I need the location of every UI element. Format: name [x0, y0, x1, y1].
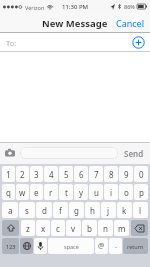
staticText: v: [71, 223, 76, 234]
staticText: 9: [124, 169, 129, 180]
staticText: @: [98, 241, 105, 251]
staticText: Cancel: [116, 17, 145, 29]
staticText: 2: [20, 169, 25, 180]
button[interactable]: @: [95, 238, 108, 254]
staticText: Send: [124, 148, 144, 159]
staticText: 1: [6, 169, 11, 180]
staticText: 123: [6, 243, 16, 250]
button[interactable]: o: [119, 184, 133, 200]
button[interactable]: 0: [134, 166, 148, 182]
button[interactable]: m: [114, 220, 129, 236]
staticText: x: [41, 223, 46, 234]
button[interactable]: 3: [30, 166, 43, 182]
button[interactable]: g: [69, 202, 84, 218]
button[interactable]: Cancel: [111, 14, 150, 32]
button[interactable]: [20, 147, 118, 159]
staticText: q: [6, 187, 11, 198]
staticText: 86%: [124, 3, 135, 10]
button[interactable]: 2: [16, 166, 29, 182]
button[interactable]: z: [21, 220, 35, 236]
staticText: o: [124, 187, 129, 198]
button[interactable]: f: [53, 202, 68, 218]
button[interactable]: k: [117, 202, 132, 218]
staticText: 7: [94, 169, 99, 180]
staticText: 11:30 PM: [62, 3, 89, 11]
button[interactable]: x: [36, 220, 50, 236]
button[interactable]: return: [123, 238, 148, 254]
staticText: n: [103, 223, 108, 234]
staticText: d: [42, 205, 47, 216]
staticText: s: [25, 205, 29, 216]
staticText: 5: [64, 169, 69, 180]
button[interactable]: space: [48, 238, 94, 254]
staticText: i: [110, 187, 113, 198]
staticText: h: [90, 205, 95, 216]
button[interactable]: i: [104, 184, 118, 200]
staticText: w: [19, 187, 26, 198]
button[interactable]: 123: [2, 238, 19, 254]
button[interactable]: r: [44, 184, 58, 200]
staticText: Verizon: [25, 4, 45, 11]
button[interactable]: 1: [2, 166, 15, 182]
button[interactable]: t: [59, 184, 73, 200]
button[interactable]: j: [101, 202, 116, 218]
button[interactable]: 4: [44, 166, 58, 182]
staticText: New Message: [42, 17, 108, 30]
button[interactable]: Dictate: [34, 238, 47, 254]
button[interactable]: Change keyboard: [20, 238, 33, 254]
button[interactable]: c: [51, 220, 65, 236]
button[interactable]: d: [36, 202, 52, 218]
staticText: b: [87, 223, 92, 234]
staticText: space: [64, 243, 79, 250]
staticText: y: [79, 187, 84, 198]
staticText: r: [49, 187, 53, 198]
button[interactable]: p: [134, 184, 148, 200]
button[interactable]: a: [2, 202, 18, 218]
button[interactable]: Shift: [2, 220, 19, 236]
button[interactable]: e: [30, 184, 43, 200]
button[interactable]: w: [16, 184, 29, 200]
button[interactable]: 6: [74, 166, 88, 182]
staticText: c: [56, 223, 60, 234]
staticText: 8: [109, 169, 114, 180]
button[interactable]: Send: [122, 145, 146, 162]
staticText: To:: [6, 38, 17, 48]
staticText: z: [26, 223, 30, 234]
staticText: t: [65, 187, 68, 198]
staticText: u: [94, 187, 99, 198]
button[interactable]: l: [133, 202, 148, 218]
button[interactable]: 7: [89, 166, 103, 182]
button[interactable]: h: [85, 202, 100, 218]
button[interactable]: Camera: [4, 147, 16, 159]
button[interactable]: .: [109, 238, 122, 254]
staticText: p: [139, 187, 144, 198]
staticText: 3: [34, 169, 39, 180]
button[interactable]: y: [74, 184, 88, 200]
staticText: f: [59, 205, 62, 216]
staticText: g: [74, 205, 79, 216]
staticText: l: [139, 205, 142, 216]
staticText: a: [8, 205, 13, 216]
button[interactable]: 9: [119, 166, 133, 182]
button[interactable]: s: [19, 202, 35, 218]
staticText: e: [34, 187, 39, 198]
button[interactable]: 5: [59, 166, 73, 182]
button[interactable]: q: [2, 184, 15, 200]
staticText: j: [107, 205, 110, 216]
button[interactable]: u: [89, 184, 103, 200]
button[interactable]: n: [98, 220, 113, 236]
staticText: .: [115, 241, 117, 251]
staticText: k: [122, 205, 127, 216]
staticText: 4: [49, 169, 54, 180]
staticText: m: [118, 223, 126, 234]
button[interactable]: b: [82, 220, 97, 236]
button[interactable]: v: [66, 220, 81, 236]
button[interactable]: Add contact: [132, 36, 145, 49]
button[interactable]: 8: [104, 166, 118, 182]
staticText: 0: [139, 169, 144, 180]
staticText: return: [127, 243, 144, 250]
staticText: 6: [79, 169, 84, 180]
button[interactable]: Delete: [131, 220, 148, 236]
